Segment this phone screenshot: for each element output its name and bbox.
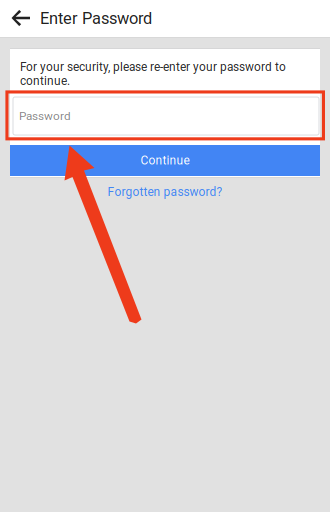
- button[interactable]: Forgotten password?: [0, 184, 330, 200]
- staticText: For your security, please re-enter your …: [20, 60, 286, 88]
- staticText: Password: [19, 109, 71, 123]
- staticText: Continue: [140, 153, 189, 168]
- button[interactable]: Back: [0, 0, 36, 37]
- button[interactable]: Continue: [10, 145, 320, 176]
- staticText: Forgotten password?: [107, 185, 222, 199]
- staticText: Enter Password: [40, 9, 152, 28]
